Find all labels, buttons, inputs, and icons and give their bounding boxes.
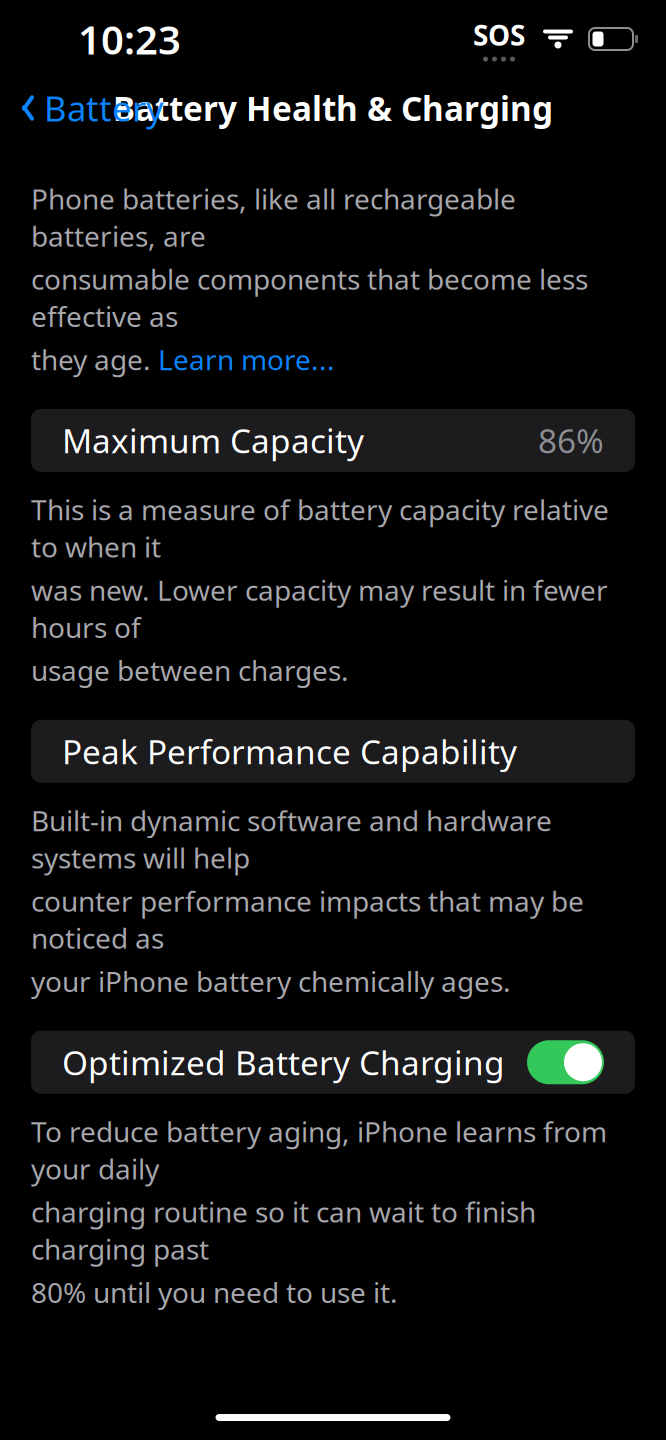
staticText: usage between charges. [31,652,349,689]
staticText: Built-in dynamic software and hardware s… [31,802,552,876]
button[interactable]: Back to Battery [0,77,164,139]
staticText: Learn more... [158,341,335,378]
staticText: your iPhone battery chemically ages. [31,963,511,1000]
button[interactable]: Maximum Capacity [31,409,635,472]
staticText: Battery Health & Charging [113,86,553,130]
staticText: was new. Lower capacity may result in fe… [31,571,608,646]
staticText: 10:23 [78,12,181,65]
staticText: Optimized Battery Charging [62,1040,505,1084]
staticText: Maximum Capacity [62,418,364,463]
staticText: Battery [44,85,164,131]
staticText: This is a measure of battery capacity re… [31,491,609,565]
button[interactable]: Optimized Battery Charging [31,1031,635,1094]
staticText: SOS [473,16,525,54]
staticText: counter performance impacts that may be … [31,882,584,957]
staticText: charging routine so it can wait to finis… [31,1193,536,1267]
button[interactable]: Learn more... [158,341,335,378]
staticText: consumable components that become less e… [31,260,588,335]
staticText: To reduce battery aging, iPhone learns f… [31,1113,607,1187]
staticText: Phone batteries, like all rechargeable b… [31,180,516,254]
staticText: 86% [538,418,604,463]
staticText: they age. [31,341,158,378]
button[interactable]: Peak Performance Capability [31,720,635,783]
staticText: Peak Performance Capability [62,729,517,773]
staticText: 80% until you need to use it. [31,1273,398,1311]
